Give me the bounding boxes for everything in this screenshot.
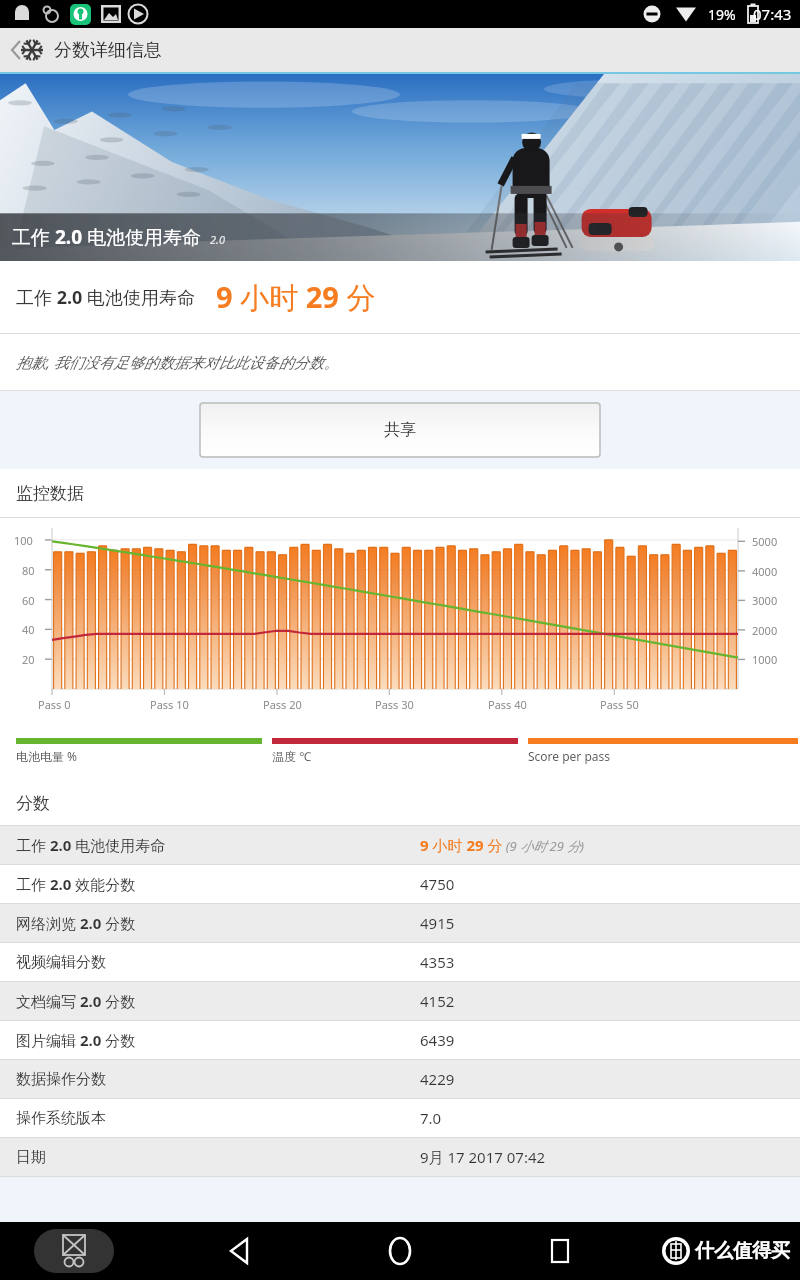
staticText: 图片编辑 2.0 分数: [16, 1030, 136, 1050]
button[interactable]: 工作 2.0 电池使用寿命: [0, 826, 800, 864]
staticText: 分数详细信息: [54, 39, 162, 62]
staticText: 4229: [420, 1069, 455, 1089]
staticText: Score per pass: [528, 748, 611, 764]
staticText: 文档编写 2.0 分数: [16, 991, 136, 1011]
staticText: 07:43: [753, 4, 792, 24]
staticText: 监控数据: [16, 483, 84, 504]
staticText: 4750: [420, 874, 455, 894]
button[interactable]: Recents: [520, 1222, 600, 1280]
button[interactable]: Home: [360, 1222, 440, 1280]
other: Back: [0, 28, 48, 72]
staticText: Pass 10: [150, 697, 189, 712]
staticText: 数据操作分数: [16, 1070, 106, 1089]
button[interactable]: 文档编写 2.0 分数: [0, 982, 800, 1020]
button[interactable]: 网络浏览 2.0 分数: [0, 904, 800, 942]
button[interactable]: 共享: [200, 403, 600, 457]
button[interactable]: 日期: [0, 1138, 800, 1176]
staticText: 7.0: [420, 1108, 442, 1128]
staticText: 操作系统版本: [16, 1109, 106, 1128]
staticText: 什么值得买: [695, 1239, 790, 1263]
staticText: Pass 50: [600, 697, 639, 712]
staticText: 电池电量 %: [16, 748, 78, 764]
button[interactable]: 数据操作分数: [0, 1060, 800, 1098]
staticText: 5000: [752, 534, 778, 549]
button[interactable]: Screenshot: [34, 1229, 114, 1273]
staticText: 抱歉, 我们没有足够的数据来对比此设备的分数。: [16, 352, 339, 372]
staticText: 4915: [420, 913, 455, 933]
button[interactable]: 图片编辑 2.0 分数: [0, 1021, 800, 1059]
staticText: 视频编辑分数: [16, 953, 106, 972]
staticText: Pass 20: [263, 697, 302, 712]
staticText: 分数: [16, 793, 50, 814]
staticText: 4353: [420, 952, 455, 972]
staticText: 工作 2.0 效能分数: [16, 874, 136, 894]
staticText: 100: [14, 533, 33, 548]
staticText: 2000: [752, 623, 778, 638]
staticText: 6439: [420, 1030, 455, 1050]
staticText: 4152: [420, 991, 455, 1011]
staticText: 网络浏览 2.0 分数: [16, 913, 136, 933]
staticText: 9 小时 29 分 (9 小时 29 分): [420, 835, 584, 855]
staticText: 9 小时 29 分: [216, 277, 376, 317]
staticText: Pass 0: [38, 697, 71, 712]
staticText: 工作 2.0 电池使用寿命: [16, 835, 166, 855]
button[interactable]: 工作 2.0 效能分数: [0, 865, 800, 903]
staticText: Pass 30: [375, 697, 414, 712]
button[interactable]: Back: [200, 1222, 280, 1280]
staticText: 日期: [16, 1148, 46, 1167]
staticText: 4000: [752, 564, 778, 579]
staticText: 9月 17 2017 07:42: [420, 1147, 546, 1167]
staticText: 60: [22, 593, 35, 608]
staticText: 3000: [752, 593, 778, 608]
staticText: 工作 2.0 电池使用寿命: [16, 285, 196, 310]
staticText: 2.0: [210, 232, 225, 247]
button[interactable]: 操作系统版本: [0, 1099, 800, 1137]
button[interactable]: 视频编辑分数: [0, 943, 800, 981]
staticText: 工作 2.0 电池使用寿命: [12, 224, 201, 250]
staticText: 温度 ℃: [272, 748, 312, 764]
staticText: 40: [22, 622, 35, 637]
button[interactable]: Back: [0, 28, 800, 72]
staticText: 80: [22, 563, 35, 578]
staticText: 共享: [384, 420, 416, 440]
staticText: 20: [22, 652, 35, 667]
staticText: 1000: [752, 652, 778, 667]
staticText: 19%: [708, 5, 736, 24]
staticText: Pass 40: [488, 697, 527, 712]
